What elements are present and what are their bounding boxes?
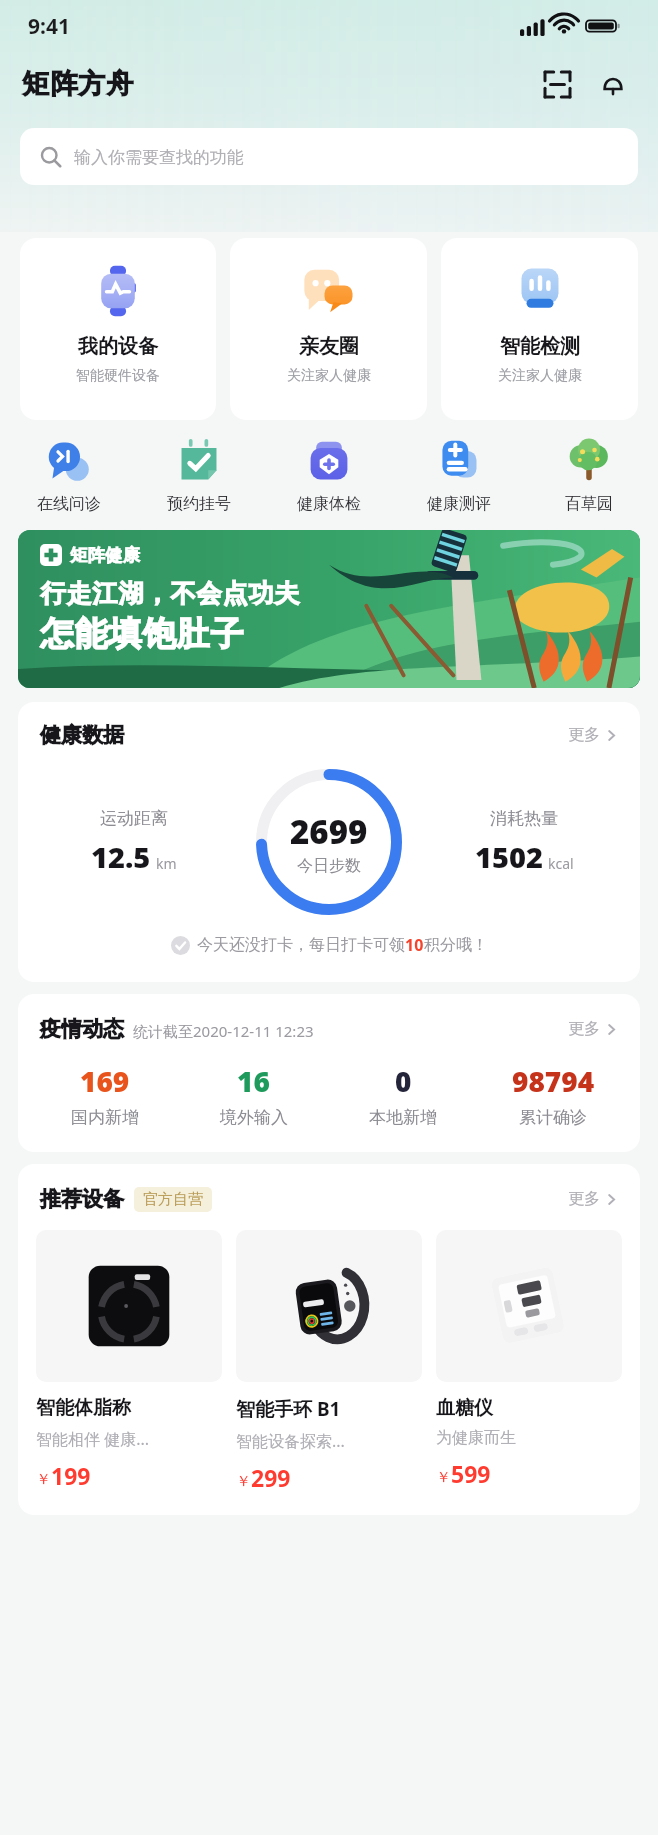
staticText: 智能设备探索... xyxy=(236,1430,345,1452)
staticText: 今日步数 xyxy=(297,856,361,876)
button[interactable]: 矩阵健康 xyxy=(18,530,640,688)
button[interactable]: 智能体脂称 xyxy=(36,1230,222,1491)
button[interactable]: 智能手环 B1 xyxy=(236,1230,422,1493)
staticText: 输入你需要查找的功能 xyxy=(74,147,244,168)
staticText: 更多 xyxy=(568,1189,600,1209)
staticText: 12.5 xyxy=(91,837,151,876)
staticText: 运动距离 xyxy=(100,808,168,829)
staticText: 2699 xyxy=(290,809,368,854)
staticText: 为健康而生 xyxy=(436,1428,516,1448)
staticText: 0 xyxy=(395,1062,412,1100)
staticText: ￥ xyxy=(436,1468,451,1487)
staticText: 累计确诊 xyxy=(519,1107,587,1128)
staticText: 健康体检 xyxy=(297,494,361,514)
staticText: 怎能填饱肚子 xyxy=(40,613,244,655)
staticText: 行走江湖，不会点功夫 xyxy=(40,578,300,609)
staticText: 9:41 xyxy=(28,12,70,41)
staticText: 健康数据 xyxy=(40,722,124,748)
staticText: 599 xyxy=(451,1458,491,1489)
staticText: 推荐设备 xyxy=(40,1186,124,1212)
staticText: km xyxy=(156,854,177,873)
staticText: 本地新增 xyxy=(369,1107,437,1128)
staticText: 更多 xyxy=(568,1019,600,1039)
staticText: 299 xyxy=(251,1462,291,1493)
staticText: 百草园 xyxy=(565,494,613,514)
staticText: 智能检测 xyxy=(500,334,580,359)
staticText: 疫情动态 xyxy=(40,1016,124,1042)
staticText: 我的设备 xyxy=(78,334,158,359)
staticText: 关注家人健康 xyxy=(287,367,371,385)
button[interactable]: 在线问诊 xyxy=(14,436,124,514)
staticText: 10 xyxy=(405,934,424,956)
button[interactable]: 更多 xyxy=(568,1189,618,1209)
staticText: 169 xyxy=(80,1062,130,1100)
staticText: 199 xyxy=(51,1460,91,1491)
staticText: 血糖仪 xyxy=(436,1396,493,1420)
button[interactable]: 更多 xyxy=(568,1019,618,1039)
staticText: 官方自营 xyxy=(143,1190,203,1209)
button[interactable]: 更多 xyxy=(568,725,618,745)
staticText: 健康测评 xyxy=(427,494,491,514)
staticText: 境外输入 xyxy=(220,1107,288,1128)
staticText: kcal xyxy=(548,854,574,873)
staticText: 预约挂号 xyxy=(167,494,231,514)
button[interactable]: 今天还没打卡，每日打卡可领 xyxy=(18,928,640,962)
staticText: ￥ xyxy=(236,1472,251,1491)
button[interactable]: Scan xyxy=(536,63,578,105)
staticText: 今天还没打卡，每日打卡可领 xyxy=(197,935,405,955)
staticText: ￥ xyxy=(36,1470,51,1489)
staticText: 98794 xyxy=(512,1062,595,1100)
staticText: 矩阵方舟 xyxy=(22,67,134,101)
staticText: 消耗热量 xyxy=(490,808,558,829)
button[interactable]: 亲友圈 xyxy=(230,238,427,420)
staticText: 智能体脂称 xyxy=(36,1396,131,1420)
button[interactable]: 百草园 xyxy=(534,436,644,514)
staticText: 智能相伴 健康... xyxy=(36,1428,150,1450)
staticText: 关注家人健康 xyxy=(498,367,582,385)
staticText: 更多 xyxy=(568,725,600,745)
button[interactable]: 输入你需要查找的功能 xyxy=(20,128,638,185)
button[interactable]: 我的设备 xyxy=(20,238,216,420)
staticText: 智能手环 B1 xyxy=(236,1396,341,1422)
button[interactable]: 健康体检 xyxy=(274,436,384,514)
staticText: 智能硬件设备 xyxy=(76,367,160,385)
staticText: 16 xyxy=(237,1062,270,1100)
staticText: 1502 xyxy=(475,837,543,876)
button[interactable]: Notifications xyxy=(592,63,634,105)
staticText: 亲友圈 xyxy=(299,334,359,359)
staticText: 积分哦！ xyxy=(424,935,488,955)
button[interactable]: 智能检测 xyxy=(441,238,638,420)
staticText: 矩阵健康 xyxy=(70,545,140,566)
staticText: 国内新增 xyxy=(71,1107,139,1128)
button[interactable]: 血糖仪 xyxy=(436,1230,622,1489)
staticText: 在线问诊 xyxy=(37,494,101,514)
staticText: 统计截至2020-12-11 12:23 xyxy=(133,1021,314,1041)
button[interactable]: 预约挂号 xyxy=(144,436,254,514)
button[interactable]: 健康测评 xyxy=(404,436,514,514)
